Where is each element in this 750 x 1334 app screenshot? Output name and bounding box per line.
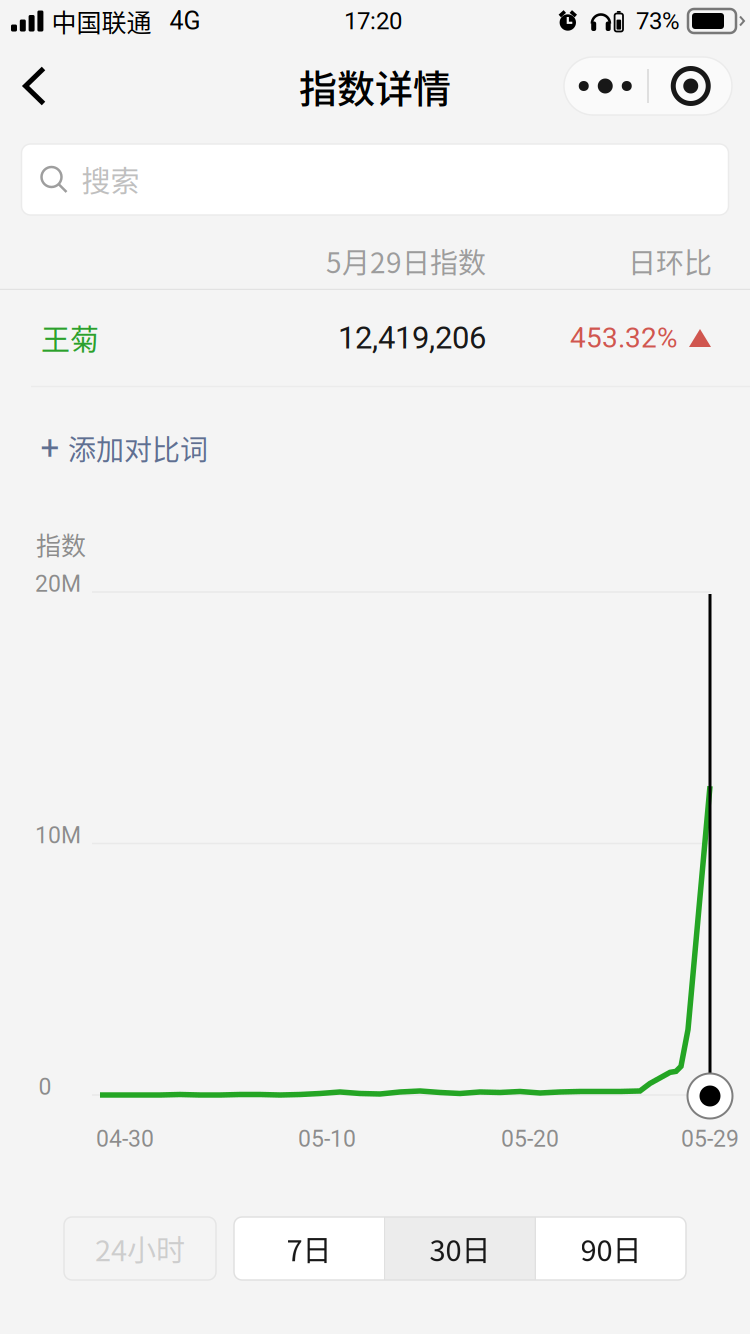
- staticText: 搜索: [81, 158, 139, 200]
- staticText: 5月29日指数: [326, 241, 486, 281]
- staticText: 05-10: [298, 1125, 356, 1152]
- staticText: 10M: [35, 822, 81, 849]
- staticText: 指数详情: [299, 58, 451, 113]
- staticText: 04-30: [96, 1125, 154, 1152]
- staticText: 05-20: [501, 1125, 559, 1152]
- staticText: 05-29: [681, 1125, 739, 1152]
- button[interactable]: More options: [564, 57, 732, 115]
- staticText: 20M: [35, 570, 81, 597]
- staticText: +: [40, 429, 59, 467]
- staticText: 指数: [36, 526, 86, 562]
- staticText: 73%: [636, 7, 680, 35]
- staticText: 中国联通: [51, 3, 151, 39]
- staticText: 30日: [429, 1227, 490, 1269]
- button[interactable]: 30日: [385, 1217, 534, 1280]
- staticText: 12,419,206: [338, 320, 486, 356]
- button[interactable]: 7日: [234, 1217, 384, 1280]
- button[interactable]: 90日: [536, 1217, 686, 1280]
- button[interactable]: +: [0, 393, 750, 503]
- button[interactable]: 24小时: [64, 1217, 216, 1280]
- button[interactable]: 搜索: [21, 144, 728, 215]
- staticText: 90日: [580, 1227, 641, 1269]
- staticText: 日环比: [628, 241, 712, 281]
- staticText: 453.32%: [570, 322, 678, 354]
- staticText: 17:20: [344, 7, 402, 35]
- staticText: 7日: [286, 1227, 331, 1269]
- staticText: 24小时: [95, 1227, 185, 1269]
- staticText: 4G: [169, 6, 200, 36]
- button[interactable]: Back: [0, 51, 70, 121]
- staticText: 添加对比词: [68, 428, 208, 468]
- button[interactable]: 王菊: [0, 290, 750, 386]
- staticText: 王菊: [41, 317, 99, 359]
- staticText: 0: [38, 1073, 51, 1100]
